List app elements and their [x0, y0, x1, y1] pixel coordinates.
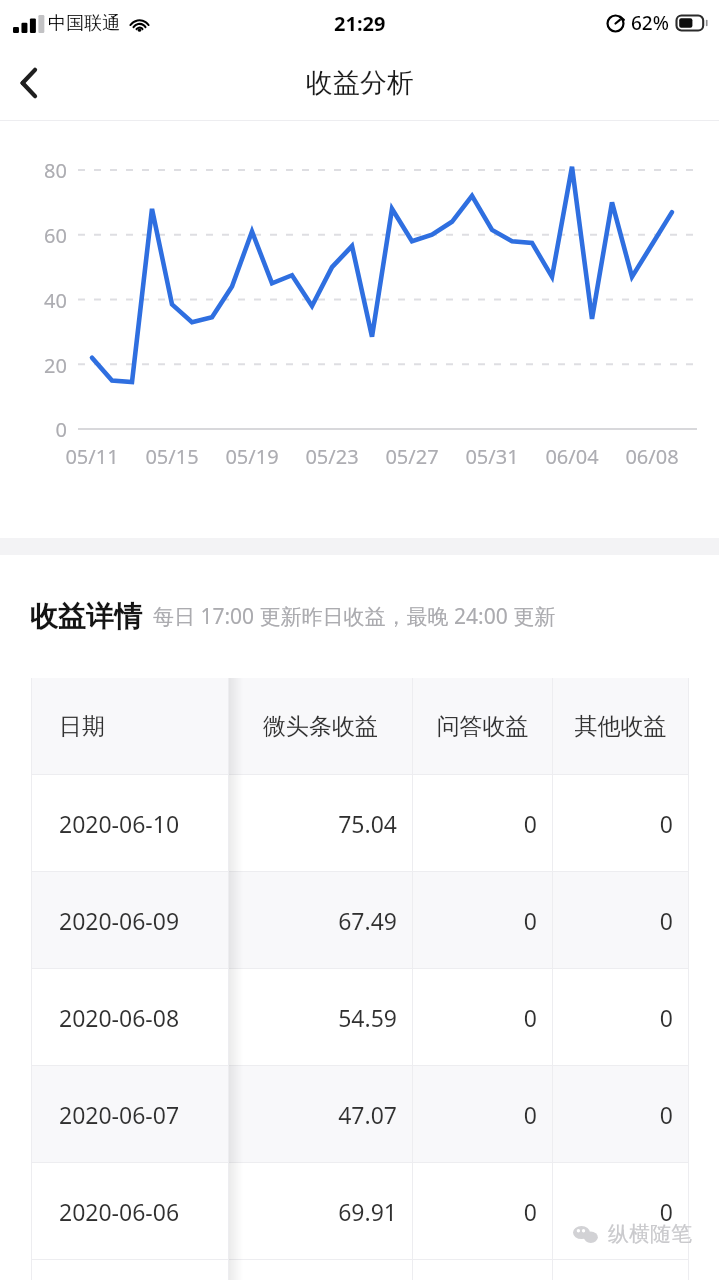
- button[interactable]: 2020-06-07: [31, 1066, 228, 1163]
- staticText: 问答收益: [413, 712, 552, 741]
- staticText: 2020-06-09: [59, 905, 180, 936]
- staticText: 2020-06-06: [59, 1196, 180, 1227]
- button[interactable]: 0: [31, 1066, 689, 1163]
- staticText: 47.07: [229, 1099, 397, 1130]
- button[interactable]: 0: [31, 775, 689, 872]
- staticText: 05/19: [210, 443, 294, 470]
- staticText: 06/04: [530, 443, 614, 470]
- button[interactable]: 日期: [31, 678, 228, 775]
- staticText: 75.04: [229, 808, 397, 839]
- staticText: 05/31: [450, 443, 534, 470]
- staticText: 0: [553, 905, 673, 936]
- button[interactable]: Back: [0, 52, 58, 114]
- staticText: 收益详情: [30, 599, 142, 634]
- staticText: 0: [413, 1196, 537, 1227]
- staticText: 微头条收益: [229, 712, 412, 741]
- staticText: 40: [0, 287, 67, 314]
- staticText: 20: [0, 352, 67, 379]
- staticText: 0: [413, 1002, 537, 1033]
- button[interactable]: 0: [31, 969, 689, 1066]
- staticText: 06/08: [610, 443, 694, 470]
- staticText: 0: [553, 808, 673, 839]
- button[interactable]: 0: [31, 872, 689, 969]
- staticText: 69.91: [229, 1196, 397, 1227]
- staticText: 21:29: [334, 10, 386, 37]
- button[interactable]: 2020-06-08: [31, 969, 228, 1066]
- staticText: 其他收益: [553, 712, 688, 741]
- staticText: 0: [413, 905, 537, 936]
- staticText: 2020-06-10: [59, 808, 180, 839]
- staticText: 0: [553, 1196, 673, 1227]
- staticText: 67.49: [229, 905, 397, 936]
- button[interactable]: 0: [31, 1163, 689, 1260]
- staticText: 05/23: [290, 443, 374, 470]
- staticText: 中国联通: [48, 12, 120, 35]
- staticText: 62%: [631, 10, 669, 36]
- staticText: 54.59: [229, 1002, 397, 1033]
- staticText: 0: [413, 808, 537, 839]
- button[interactable]: 2020-06-09: [31, 872, 228, 969]
- button[interactable]: 2020-06-06: [31, 1163, 228, 1260]
- staticText: 每日 17:00 更新昨日收益，最晚 24:00 更新: [153, 602, 556, 631]
- staticText: 收益分析: [306, 66, 414, 100]
- staticText: 05/27: [370, 443, 454, 470]
- button[interactable]: 2020-06-10: [31, 775, 228, 872]
- staticText: 日期: [59, 712, 105, 741]
- staticText: 60: [0, 222, 67, 249]
- staticText: 0: [413, 1099, 537, 1130]
- staticText: 80: [0, 157, 67, 184]
- staticText: 05/11: [50, 443, 134, 470]
- staticText: 0: [553, 1099, 673, 1130]
- staticText: 0: [553, 1002, 673, 1033]
- staticText: 05/15: [130, 443, 214, 470]
- staticText: 纵横随笔: [608, 1221, 692, 1247]
- staticText: 2020-06-07: [59, 1099, 180, 1130]
- staticText: 2020-06-08: [59, 1002, 180, 1033]
- staticText: 0: [0, 416, 67, 443]
